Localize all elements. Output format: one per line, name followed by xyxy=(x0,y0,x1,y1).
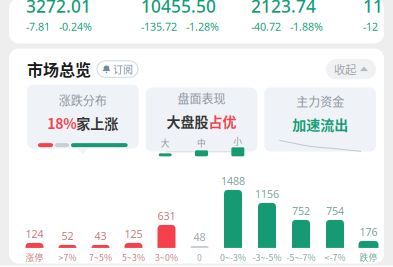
staticText: 1156 xyxy=(255,187,279,201)
staticText: 125 xyxy=(124,227,142,241)
staticText: 大 xyxy=(161,136,170,149)
staticText: -1.28% xyxy=(186,19,219,34)
staticText: 3272.01 xyxy=(26,0,91,17)
staticText: -0.24% xyxy=(59,19,92,34)
button[interactable]: 涨跌分布 xyxy=(27,84,139,154)
staticText: 0 xyxy=(197,251,202,263)
staticText: >7% xyxy=(58,251,76,263)
button[interactable]: 订阅 xyxy=(97,61,138,77)
staticText: 加速流出 xyxy=(292,114,348,134)
staticText: 176 xyxy=(359,225,377,239)
staticText: 52 xyxy=(61,229,73,243)
staticText: 跌停 xyxy=(359,251,377,263)
staticText: 收起 xyxy=(334,61,356,77)
staticText: 家上涨 xyxy=(76,113,118,133)
staticText: 5~3% xyxy=(122,251,145,263)
staticText: -12 xyxy=(363,19,378,34)
staticText: 10455.50 xyxy=(141,0,216,17)
staticText: 涨跌分布 xyxy=(59,91,107,109)
staticText: -7.81 xyxy=(26,19,50,34)
staticText: 2123.74 xyxy=(251,0,316,17)
staticText: 754 xyxy=(326,204,344,218)
staticText: 7~5% xyxy=(89,251,112,263)
staticText: 11 xyxy=(363,0,383,17)
staticText: 小 xyxy=(233,135,242,147)
staticText: 3~0% xyxy=(155,251,178,263)
staticText: 752 xyxy=(292,204,310,218)
staticText: 大盘股 xyxy=(166,111,208,131)
staticText: -5~-7% xyxy=(286,251,315,263)
staticText: -1.88% xyxy=(290,19,323,34)
staticText: 占优 xyxy=(208,111,236,131)
button[interactable]: 收起 xyxy=(326,59,376,79)
staticText: 0~-3% xyxy=(220,251,246,263)
staticText: -40.72 xyxy=(251,19,281,34)
staticText: 43 xyxy=(94,229,106,243)
staticText: 1488 xyxy=(221,174,245,188)
staticText: 631 xyxy=(157,209,175,223)
staticText: <-7% xyxy=(324,251,345,263)
staticText: 涨停 xyxy=(25,251,43,263)
button[interactable]: 主力资金 xyxy=(264,87,376,151)
staticText: 中 xyxy=(197,136,206,149)
staticText: 盘面表现 xyxy=(177,90,225,107)
staticText: 124 xyxy=(25,227,43,241)
staticText: 48 xyxy=(193,230,205,244)
staticText: -135.72 xyxy=(141,19,177,34)
staticText: 主力资金 xyxy=(296,93,344,110)
staticText: 订阅 xyxy=(113,62,133,76)
staticText: 18% xyxy=(47,113,76,133)
staticText: -3~-5% xyxy=(252,251,281,263)
button[interactable]: 盘面表现 xyxy=(146,87,257,151)
staticText: 市场总览 xyxy=(27,57,91,81)
